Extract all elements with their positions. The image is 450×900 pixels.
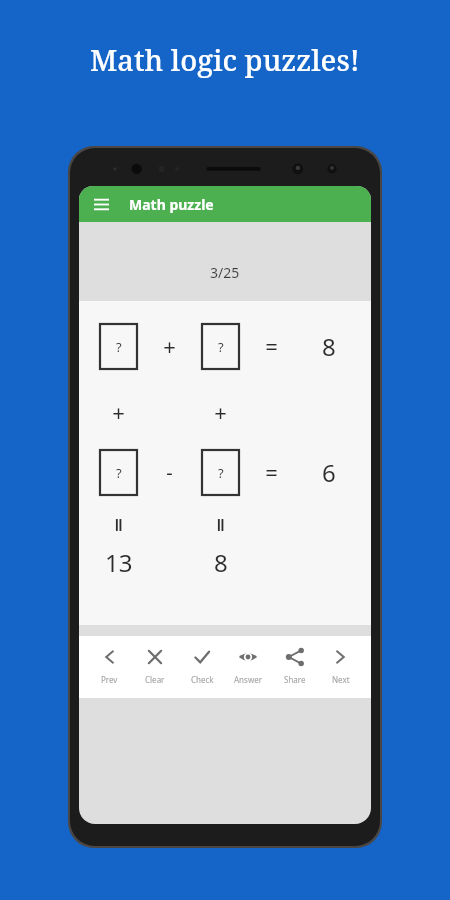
button[interactable]: Unknown value — [100, 450, 137, 495]
button[interactable]: Check — [179, 636, 225, 698]
staticText: 8 — [322, 330, 336, 363]
button[interactable]: Share — [272, 636, 318, 698]
staticText: + — [112, 397, 125, 421]
staticText: 3/25 — [210, 263, 240, 282]
staticText: Share — [284, 674, 306, 685]
staticText: + — [163, 331, 176, 361]
staticText: = — [265, 457, 278, 487]
button[interactable]: Answer — [225, 636, 271, 698]
button[interactable]: Unknown value — [202, 450, 239, 495]
staticText: ? — [116, 338, 122, 356]
staticText: Prev — [101, 674, 118, 685]
staticText: + — [214, 397, 227, 421]
staticText: Check — [191, 674, 214, 685]
button[interactable]: Next — [318, 636, 364, 698]
staticText: ? — [218, 464, 224, 482]
button[interactable]: Prev — [86, 636, 132, 698]
staticText: Answer — [234, 674, 262, 685]
staticText: Math logic puzzles! — [90, 40, 360, 79]
button[interactable]: Open navigation menu — [87, 190, 115, 218]
staticText: Next — [332, 674, 350, 685]
staticText: ? — [218, 338, 224, 356]
button[interactable]: Clear — [132, 636, 178, 698]
button[interactable]: Unknown value — [100, 324, 137, 369]
staticText: Math puzzle — [129, 195, 214, 214]
staticText: ? — [116, 464, 122, 482]
staticText: 13 — [105, 546, 133, 579]
staticText: 6 — [322, 456, 336, 489]
staticText: = — [265, 331, 278, 361]
staticText: 8 — [214, 546, 228, 579]
button[interactable]: Unknown value — [202, 324, 239, 369]
staticText: Clear — [145, 674, 165, 685]
staticText: - — [166, 459, 173, 486]
